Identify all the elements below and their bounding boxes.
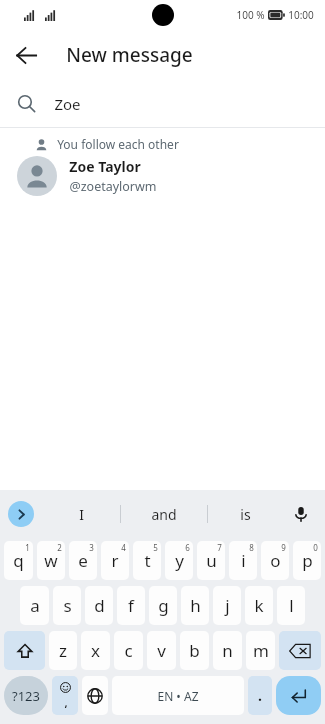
button[interactable]: p (293, 541, 321, 580)
staticText: y (175, 549, 184, 572)
staticText: r (111, 549, 119, 572)
button[interactable]: Emoji and comma (52, 676, 78, 715)
staticText: Zoe (54, 94, 81, 114)
button[interactable]: r (101, 541, 129, 580)
staticText: @zoetaylorwm (69, 178, 157, 195)
button[interactable]: d (85, 586, 113, 625)
staticText: 2 (57, 542, 62, 553)
button[interactable]: ?123 (4, 676, 48, 715)
staticText: h (190, 594, 201, 617)
button[interactable]: c (114, 631, 143, 670)
staticText: 8 (249, 542, 254, 553)
staticText: j (225, 594, 230, 617)
staticText: z (59, 639, 67, 662)
button[interactable]: . (248, 676, 272, 715)
staticText: f (128, 594, 134, 617)
button[interactable]: a (20, 586, 49, 625)
staticText: e (78, 549, 88, 572)
staticText: 3 (89, 542, 94, 553)
staticText: 9 (281, 542, 286, 553)
button[interactable]: f (117, 586, 145, 625)
button[interactable]: Backspace (279, 631, 321, 670)
button[interactable]: s (53, 586, 81, 625)
staticText: p (302, 549, 313, 572)
button[interactable]: g (149, 586, 177, 625)
staticText: , (64, 695, 68, 710)
button[interactable]: I (44, 494, 118, 534)
button[interactable]: Voice input (286, 499, 316, 529)
staticText: 5 (153, 542, 158, 553)
staticText: d (94, 594, 105, 617)
staticText: u (206, 549, 217, 572)
staticText: New message (66, 42, 193, 68)
button[interactable]: and (122, 494, 206, 534)
button[interactable]: is (209, 494, 281, 534)
button[interactable]: EN • AZ (112, 676, 244, 715)
staticText: g (158, 594, 169, 617)
staticText: 4 (121, 542, 126, 553)
staticText: ?123 (12, 687, 40, 705)
button[interactable]: u (197, 541, 225, 580)
staticText: is (240, 505, 251, 524)
button[interactable]: Zoe (0, 80, 325, 127)
button[interactable]: i (229, 541, 257, 580)
staticText: o (270, 549, 281, 572)
staticText: x (91, 639, 100, 662)
staticText: m (253, 639, 269, 662)
button[interactable]: j (213, 586, 241, 625)
button[interactable]: z (49, 631, 77, 670)
button[interactable]: o (261, 541, 289, 580)
staticText: 100 % (236, 8, 265, 22)
button[interactable]: You follow each other (0, 128, 325, 196)
staticText: c (124, 639, 133, 662)
staticText: a (30, 594, 40, 617)
button[interactable]: l (277, 586, 305, 625)
button[interactable]: More suggestions (8, 501, 34, 527)
staticText: I (79, 505, 84, 524)
staticText: k (254, 594, 264, 617)
button[interactable]: b (180, 631, 209, 670)
staticText: i (241, 549, 246, 572)
staticText: q (13, 549, 24, 572)
button[interactable]: t (133, 541, 161, 580)
staticText: 10:00 (288, 8, 314, 22)
button[interactable]: k (245, 586, 273, 625)
staticText: v (157, 639, 166, 662)
staticText: 6 (185, 542, 190, 553)
button[interactable]: x (81, 631, 110, 670)
button[interactable]: y (165, 541, 193, 580)
button[interactable]: Enter (276, 676, 321, 715)
button[interactable]: n (213, 631, 242, 670)
staticText: s (63, 594, 72, 617)
staticText: l (289, 594, 294, 617)
staticText: n (222, 639, 233, 662)
button[interactable]: m (246, 631, 275, 670)
button[interactable]: Shift (4, 631, 45, 670)
staticText: 0 (313, 542, 318, 553)
button[interactable]: Back (8, 37, 44, 73)
staticText: 1 (25, 542, 30, 553)
button[interactable]: q (4, 541, 33, 580)
staticText: w (44, 549, 58, 572)
staticText: You follow each other (57, 136, 179, 152)
button[interactable]: h (181, 586, 209, 625)
button[interactable]: Change language (82, 676, 108, 715)
button[interactable]: e (69, 541, 97, 580)
button[interactable]: v (147, 631, 176, 670)
staticText: 7 (217, 542, 222, 553)
staticText: and (151, 505, 177, 524)
button[interactable]: w (37, 541, 65, 580)
staticText: b (189, 639, 200, 662)
staticText: Zoe Taylor (69, 157, 141, 176)
staticText: . (258, 686, 262, 705)
staticText: t (144, 549, 151, 572)
staticText: EN • AZ (157, 688, 199, 704)
